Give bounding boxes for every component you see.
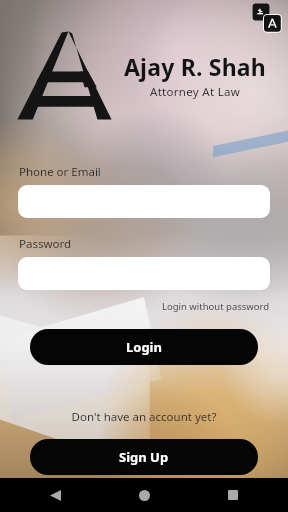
staticText: Phone or Email [19,164,101,180]
button[interactable] [18,257,270,290]
staticText: Sign Up [119,448,169,466]
button[interactable]: Home [129,480,159,510]
button[interactable]: Sign Up [30,439,258,475]
staticText: Password [19,236,72,252]
button[interactable]: Login [30,329,258,365]
staticText: Don't have an account yet? [0,409,288,425]
button[interactable]: Back [40,480,70,510]
button[interactable]: Recents [218,480,248,510]
button[interactable] [18,185,270,218]
staticText: Login [126,338,162,356]
staticText: Attorney At Law [150,84,241,100]
button[interactable]: Translate [252,3,282,33]
button[interactable]: Login without password [160,298,272,315]
staticText: Ajay R. Shah [124,51,266,82]
